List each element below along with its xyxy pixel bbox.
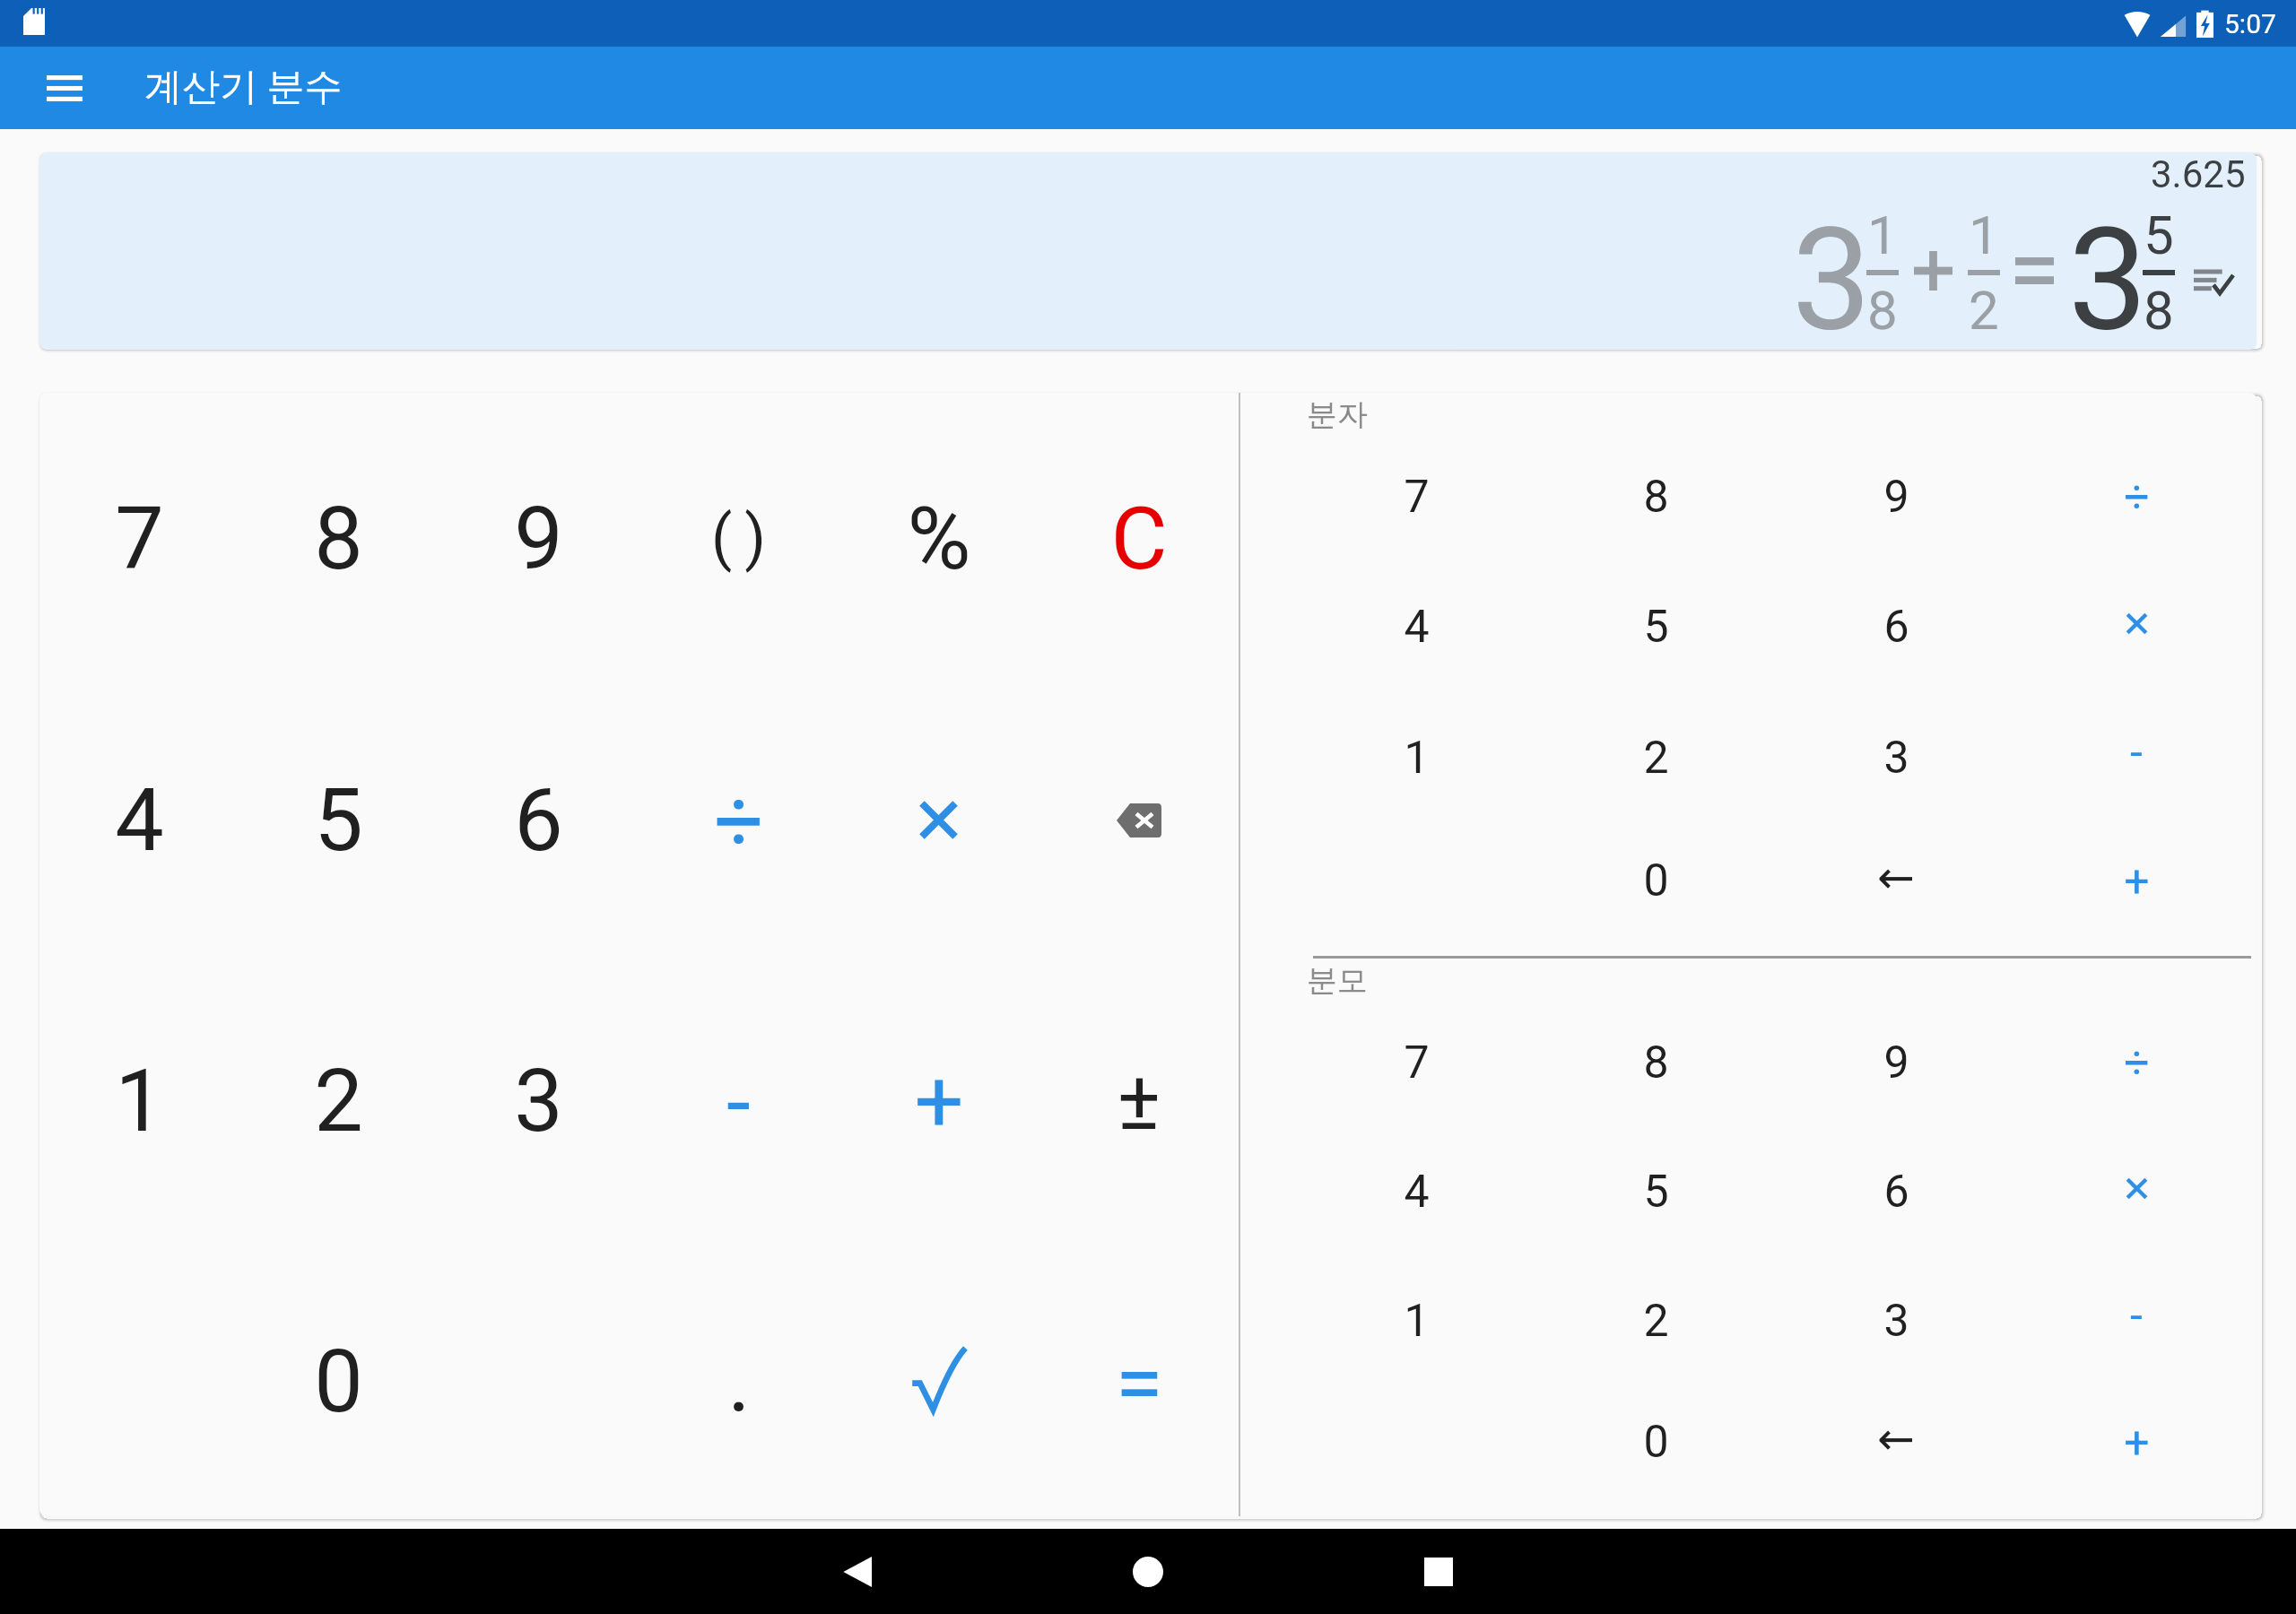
button[interactable]: Home bbox=[1076, 1529, 1220, 1614]
button[interactable]: 3.625 bbox=[39, 152, 2257, 350]
staticText: 3 bbox=[1792, 197, 1872, 350]
button[interactable]: Back bbox=[785, 1529, 928, 1614]
button[interactable]: 1 bbox=[1297, 685, 1536, 816]
staticText: 5:07 bbox=[2224, 8, 2276, 39]
staticText: 계산기 분수 bbox=[144, 64, 343, 111]
staticText: + bbox=[2124, 1417, 2150, 1470]
staticText: 3.625 bbox=[2151, 152, 2246, 196]
staticText: C bbox=[1110, 488, 1168, 590]
button[interactable]: Open navigation menu bbox=[22, 47, 108, 129]
button[interactable]: C bbox=[1039, 393, 1239, 674]
button[interactable]: 2 bbox=[1536, 685, 1776, 816]
button[interactable] bbox=[839, 674, 1039, 955]
button[interactable]: - bbox=[639, 955, 839, 1236]
staticText: ← bbox=[1877, 1413, 1915, 1465]
button[interactable] bbox=[2016, 1120, 2257, 1249]
staticText: 0 bbox=[314, 1331, 363, 1433]
button[interactable]: ÷ bbox=[2016, 425, 2257, 555]
button[interactable]: 4 bbox=[39, 674, 239, 955]
button[interactable]: 9 bbox=[1776, 991, 2016, 1120]
button[interactable]: 8 bbox=[1536, 425, 1776, 555]
staticText: 4 bbox=[115, 769, 164, 872]
staticText: 7 bbox=[1404, 471, 1430, 524]
staticText: 1 bbox=[1404, 732, 1430, 785]
button[interactable]: 7 bbox=[39, 393, 239, 674]
other: Square root bbox=[911, 1347, 966, 1410]
button[interactable]: 8 bbox=[1536, 991, 1776, 1120]
button[interactable]: Square root bbox=[839, 1236, 1039, 1516]
staticText: 1 bbox=[1969, 204, 1999, 266]
button[interactable]: 6 bbox=[439, 674, 639, 955]
staticText: - bbox=[2130, 726, 2143, 779]
button[interactable]: 3 bbox=[439, 955, 639, 1236]
staticText: 5 bbox=[1643, 601, 1669, 654]
button[interactable]: ← bbox=[1776, 1378, 2016, 1507]
button[interactable]: 4 bbox=[1297, 555, 1536, 685]
button[interactable]: 6 bbox=[1776, 1120, 2016, 1249]
button[interactable]: ← bbox=[1776, 816, 2016, 947]
button[interactable]: Backspace bbox=[1039, 674, 1239, 955]
staticText: 8 bbox=[1643, 471, 1669, 524]
staticText: - bbox=[726, 1052, 751, 1154]
staticText: 분자 bbox=[1307, 395, 1368, 434]
staticText: ( ) bbox=[711, 502, 766, 574]
staticText: . bbox=[727, 1330, 751, 1432]
button[interactable]: 0 bbox=[239, 1236, 439, 1516]
staticText: 분모 bbox=[1307, 961, 1368, 1000]
button[interactable]: 8 bbox=[239, 393, 439, 674]
button[interactable]: 0 bbox=[1536, 1378, 1776, 1507]
staticText: 6 bbox=[1883, 601, 1909, 654]
button[interactable]: . bbox=[639, 1236, 839, 1516]
button[interactable]: 2 bbox=[1536, 1249, 1776, 1378]
button[interactable]: 0 bbox=[1536, 816, 1776, 947]
button[interactable]: 1 bbox=[1297, 1249, 1536, 1378]
button[interactable] bbox=[2016, 555, 2257, 685]
staticText: 2 bbox=[1643, 732, 1669, 785]
button[interactable]: ± bbox=[1039, 955, 1239, 1236]
button[interactable]: 3 bbox=[1776, 685, 2016, 816]
staticText: ÷ bbox=[2124, 1037, 2150, 1089]
button[interactable]: = bbox=[1039, 1236, 1239, 1516]
staticText: 9 bbox=[514, 488, 563, 590]
button[interactable]: 5 bbox=[239, 674, 439, 955]
staticText: 8 bbox=[314, 488, 363, 590]
button[interactable]: 7 bbox=[1297, 991, 1536, 1120]
staticText: 7 bbox=[1404, 1037, 1430, 1089]
button[interactable]: ( ) bbox=[639, 393, 839, 674]
button[interactable]: - bbox=[2016, 1249, 2257, 1378]
staticText: 3 bbox=[1883, 1295, 1909, 1348]
button[interactable]: 1 bbox=[39, 955, 239, 1236]
other: Backspace bbox=[1117, 803, 1161, 837]
button[interactable]: 5 bbox=[1536, 555, 1776, 685]
staticText: 3 bbox=[514, 1050, 563, 1152]
button[interactable]: 7 bbox=[1297, 425, 1536, 555]
button[interactable]: % bbox=[839, 393, 1039, 674]
staticText: 3 bbox=[2068, 197, 2148, 350]
button[interactable]: ÷ bbox=[639, 674, 839, 955]
staticText: 8 bbox=[1867, 279, 1898, 342]
button[interactable]: + bbox=[839, 955, 1039, 1236]
button[interactable]: 9 bbox=[1776, 425, 2016, 555]
button[interactable]: 3 bbox=[1776, 1249, 2016, 1378]
staticText: 5 bbox=[314, 769, 363, 872]
button[interactable]: + bbox=[2016, 1378, 2257, 1507]
button[interactable]: 5 bbox=[1536, 1120, 1776, 1249]
button[interactable]: ÷ bbox=[2016, 991, 2257, 1120]
staticText: 6 bbox=[1883, 1166, 1909, 1219]
staticText: + bbox=[914, 1051, 964, 1153]
button[interactable]: + bbox=[2016, 816, 2257, 947]
button[interactable]: 4 bbox=[1297, 1120, 1536, 1249]
staticText: 5 bbox=[1643, 1166, 1669, 1219]
staticText: ÷ bbox=[714, 770, 764, 872]
button[interactable]: 6 bbox=[1776, 555, 2016, 685]
button[interactable]: 9 bbox=[439, 393, 639, 674]
button[interactable]: Recent apps bbox=[1367, 1529, 1510, 1614]
staticText: - bbox=[2130, 1289, 2143, 1342]
staticText: 5 bbox=[2144, 204, 2174, 266]
button[interactable]: 2 bbox=[239, 955, 439, 1236]
button[interactable]: - bbox=[2016, 685, 2257, 816]
